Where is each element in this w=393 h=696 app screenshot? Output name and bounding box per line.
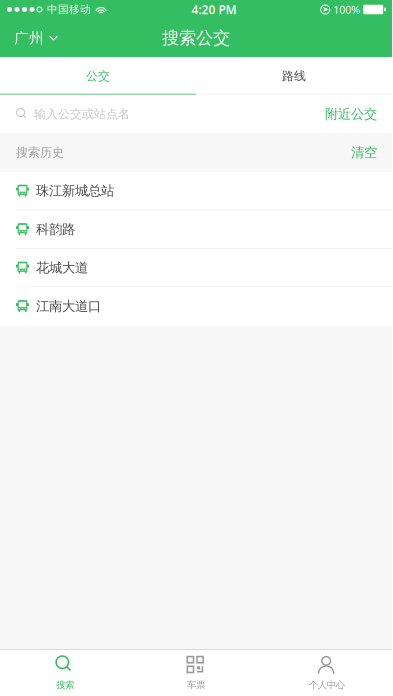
button[interactable]: 科韵路: [0, 210, 392, 249]
staticText: 搜索: [56, 679, 74, 691]
button[interactable]: 公交: [0, 57, 196, 95]
button[interactable]: 搜索: [0, 649, 131, 696]
button[interactable]: 附近公交: [321, 96, 381, 132]
staticText: 搜索历史: [16, 145, 64, 160]
staticText: 搜索公交: [162, 27, 230, 49]
button[interactable]: 花城大道: [0, 249, 392, 287]
staticText: 广州: [14, 29, 44, 47]
staticText: 江南大道口: [36, 298, 101, 314]
button[interactable]: 路线: [196, 57, 392, 95]
staticText: 花城大道: [36, 260, 88, 276]
button[interactable]: 清空: [347, 133, 381, 172]
staticText: 路线: [282, 69, 306, 83]
staticText: 中国移动: [47, 3, 91, 16]
button[interactable]: 车票: [131, 649, 261, 696]
staticText: 公交: [86, 69, 110, 83]
staticText: 清空: [351, 144, 377, 161]
staticText: 附近公交: [325, 106, 377, 122]
staticText: 输入公交或站点名: [34, 107, 130, 121]
button[interactable]: 广州: [0, 19, 72, 57]
staticText: 珠江新城总站: [36, 183, 114, 199]
staticText: 100%: [333, 2, 360, 17]
staticText: 车票: [187, 679, 205, 691]
staticText: 个人中心: [309, 679, 345, 691]
button[interactable]: 个人中心: [261, 649, 392, 696]
staticText: 4:20 PM: [192, 1, 237, 17]
button[interactable]: 珠江新城总站: [0, 172, 392, 210]
staticText: 科韵路: [36, 221, 75, 237]
button[interactable]: 江南大道口: [0, 287, 392, 326]
